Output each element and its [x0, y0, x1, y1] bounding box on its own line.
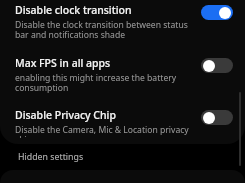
button[interactable]: Disable Privacy Chip [201, 110, 233, 125]
button[interactable]: Max FPS in all apps [0, 47, 245, 100]
staticText: Disable the Camera, Mic & Location priva… [15, 124, 195, 138]
staticText: Max FPS in all apps [15, 56, 111, 70]
staticText: Disable clock transition [15, 3, 132, 17]
staticText: Disable Privacy Chip [15, 108, 116, 122]
staticText: Disable the clock transition between sta… [15, 19, 195, 41]
button[interactable]: Disable Privacy Chip [0, 100, 245, 144]
button[interactable]: Max FPS in all apps [201, 58, 233, 73]
staticText: enabling this might increase the battery… [15, 72, 195, 94]
button[interactable]: Disable clock transition [0, 0, 245, 47]
button[interactable]: Disable clock transition [201, 5, 233, 20]
staticText: Hidden settings [18, 151, 84, 163]
